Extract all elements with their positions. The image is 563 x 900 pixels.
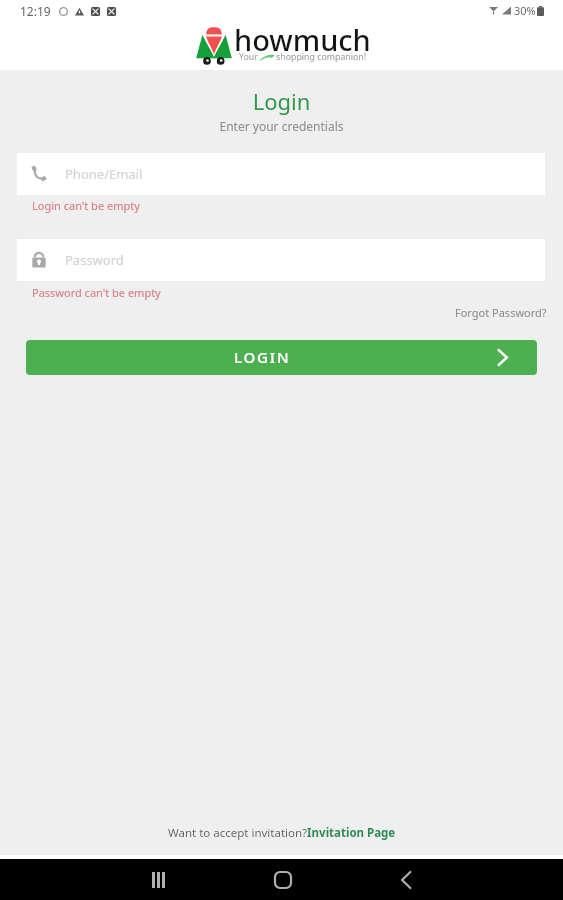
button[interactable]: Recents <box>133 859 183 900</box>
staticText: Want to accept invitation?Invitation Pag… <box>168 825 396 841</box>
staticText: Your <box>239 51 258 63</box>
button[interactable]: Want to accept invitation?Invitation Pag… <box>164 822 400 844</box>
button[interactable]: Forgot Password? <box>447 301 555 324</box>
staticText: Password <box>65 251 124 269</box>
button[interactable]: Phone/Email <box>17 153 545 195</box>
button[interactable]: Password <box>17 239 545 281</box>
staticText: 30% <box>514 3 536 18</box>
staticText: howmuch <box>234 20 371 59</box>
staticText: Forgot Password? <box>455 305 547 320</box>
staticText: Enter your credentials <box>0 118 563 134</box>
button[interactable]: Home <box>258 859 308 900</box>
staticText: 12:19 <box>20 3 51 19</box>
staticText: Login can't be empty <box>32 198 140 213</box>
staticText: Phone/Email <box>65 165 143 183</box>
staticText: Password can't be empty <box>32 285 161 300</box>
staticText: Login <box>0 86 563 116</box>
staticText: LOGIN <box>234 347 291 367</box>
button[interactable]: Back <box>381 859 431 900</box>
button[interactable]: LOGIN <box>26 340 537 375</box>
staticText: shopping companion! <box>276 51 367 63</box>
